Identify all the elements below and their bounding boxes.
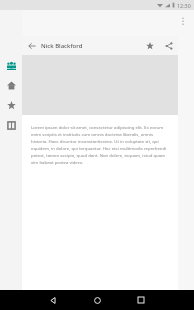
button[interactable]: Back [22, 36, 41, 55]
staticText: Nick Blackford [41, 42, 83, 50]
button[interactable]: Back [31, 290, 75, 310]
button[interactable]: Recent apps [119, 290, 163, 310]
staticText: Lorem ipsum dolor sit amet, consectetur … [31, 124, 167, 165]
button[interactable]: Favorite [140, 36, 159, 55]
button[interactable]: Home [75, 290, 119, 310]
button[interactable]: Library [2, 116, 20, 134]
button[interactable]: Favorites [2, 96, 20, 114]
button[interactable]: Home [2, 76, 20, 94]
staticText: 12:30 [177, 2, 191, 9]
button[interactable]: Share [159, 36, 178, 55]
button[interactable]: People [2, 56, 20, 74]
button[interactable]: More options [172, 10, 194, 32]
